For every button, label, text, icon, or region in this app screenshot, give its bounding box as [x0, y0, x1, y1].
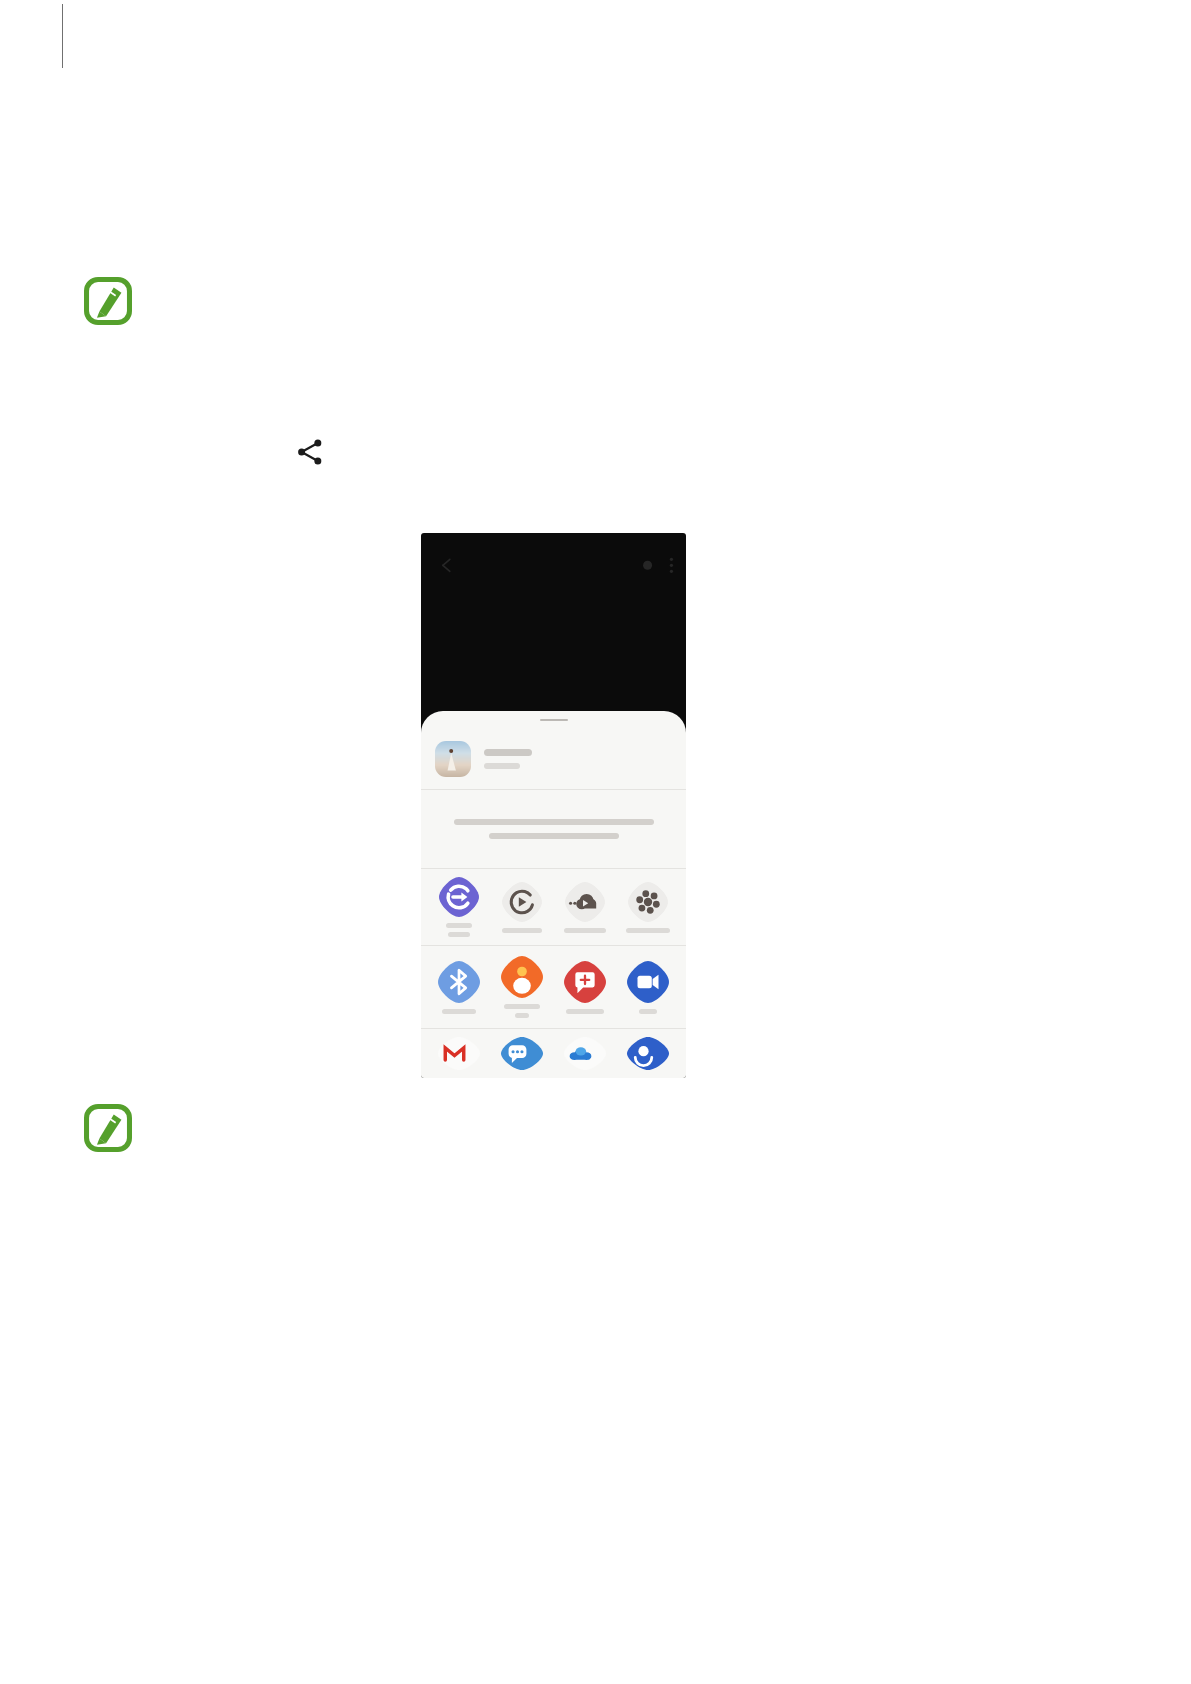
button[interactable]: OneDrive [556, 1037, 614, 1070]
button[interactable]: Contacts [493, 956, 551, 1018]
button[interactable]: Duo [619, 961, 677, 1014]
button[interactable] [435, 729, 672, 789]
button[interactable]: Messages [493, 1037, 551, 1070]
button[interactable]: Link Sharing [556, 882, 614, 933]
button[interactable]: Share [296, 438, 324, 466]
button[interactable]: Drive [619, 1037, 677, 1070]
button[interactable]: Shared album [619, 882, 677, 933]
button[interactable]: Create note [556, 961, 614, 1014]
button[interactable]: Bluetooth [430, 961, 488, 1014]
button[interactable]: Quick Share [430, 877, 488, 937]
button[interactable]: Smart View [493, 882, 551, 933]
button[interactable]: Gmail [430, 1037, 488, 1070]
